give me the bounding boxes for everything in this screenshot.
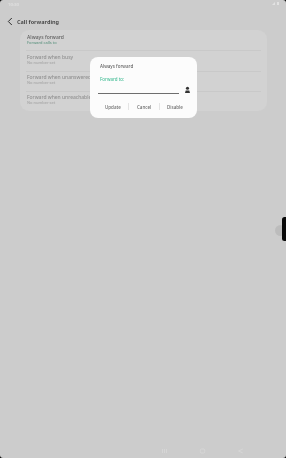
button[interactable]: Select contact (181, 84, 193, 96)
staticText: Forward calls to (27, 40, 57, 45)
staticText: Forward when unanswered (27, 74, 92, 81)
button[interactable]: Disable (160, 99, 190, 114)
staticText: 10:30 (8, 1, 19, 7)
staticText: Forward when unreachable (27, 94, 92, 101)
staticText: Disable (167, 104, 183, 110)
button[interactable]: Forward when unanswered (20, 70, 267, 90)
staticText: Forward to: (100, 76, 125, 82)
staticText: Always forward (27, 34, 64, 41)
staticText: No number set (27, 60, 56, 65)
staticText: Always forward (100, 63, 134, 69)
staticText: No number set (27, 100, 56, 105)
button[interactable]: Forward when unreachable (20, 90, 267, 110)
button[interactable]: Edge panel (282, 217, 286, 241)
button[interactable]: Update (98, 99, 128, 114)
button[interactable]: Always forward (20, 30, 267, 50)
button[interactable]: Navigate up (2, 13, 18, 29)
staticText: Forward when busy (27, 54, 74, 61)
button[interactable]: Cancel (129, 99, 159, 114)
button[interactable]: Forward when busy (20, 50, 267, 70)
staticText: Cancel (137, 104, 152, 110)
staticText: Call forwarding (17, 18, 60, 25)
staticText: Update (105, 104, 121, 110)
staticText: No number set (27, 80, 56, 85)
